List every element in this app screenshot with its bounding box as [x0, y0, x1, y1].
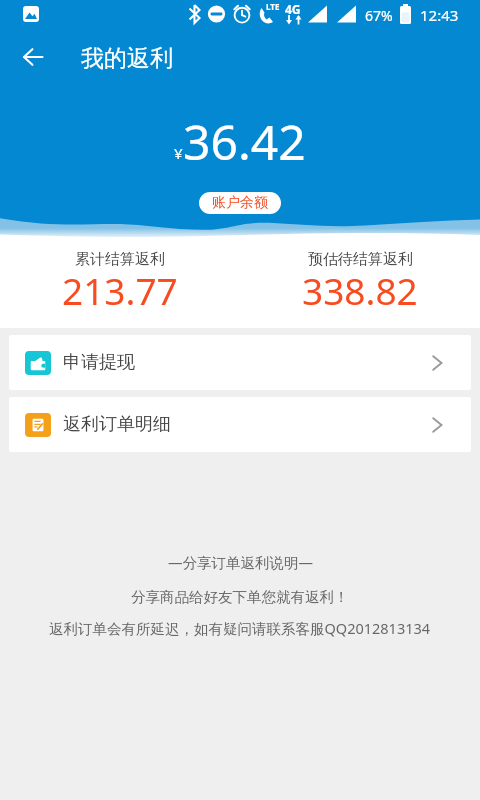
- staticText: 12:43: [420, 5, 459, 25]
- button[interactable]: 返利订单明细: [9, 397, 471, 452]
- staticText: 分享商品给好友下单您就有返利！: [131, 588, 349, 606]
- staticText: 我的返利: [81, 44, 173, 73]
- button[interactable]: 账户余额: [199, 192, 281, 214]
- staticText: ¥: [174, 143, 183, 163]
- staticText: 213.77: [62, 265, 178, 315]
- staticText: 4G: [285, 1, 301, 17]
- staticText: 返利订单明细: [63, 413, 171, 436]
- staticText: 338.82: [302, 265, 418, 315]
- staticText: 67%: [365, 6, 393, 25]
- button[interactable]: Back: [9, 33, 57, 81]
- staticText: 返利订单会有所延迟，如有疑问请联系客服QQ2012813134: [49, 618, 431, 638]
- staticText: LTE: [266, 1, 280, 12]
- staticText: —分享订单返利说明—: [168, 552, 313, 572]
- button[interactable]: 申请提现: [9, 335, 471, 390]
- staticText: 累计结算返利: [75, 250, 165, 269]
- staticText: 申请提现: [63, 351, 135, 374]
- staticText: 账户余额: [212, 194, 268, 212]
- staticText: 预估待结算返利: [308, 250, 413, 269]
- staticText: 36.42: [183, 109, 306, 174]
